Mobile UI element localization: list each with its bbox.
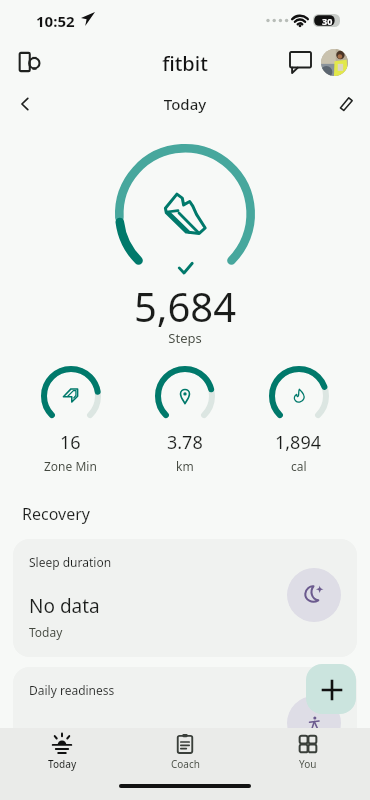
button[interactable]: 1,894	[260, 366, 337, 474]
button[interactable]: Daily readiness	[13, 667, 357, 775]
button[interactable]: Devices	[16, 48, 44, 76]
staticText: 10:52	[36, 11, 75, 31]
button[interactable]: Coach	[143, 733, 227, 771]
button[interactable]: Edit	[334, 92, 358, 116]
staticText: No data	[29, 593, 100, 619]
staticText: Sleep duration	[29, 554, 112, 570]
button[interactable]: Messages	[288, 50, 312, 74]
staticText: km	[176, 458, 194, 474]
button[interactable]: Sleep duration	[13, 539, 357, 657]
button[interactable]: Add	[306, 664, 356, 714]
staticText: You	[299, 757, 317, 771]
staticText: 30	[322, 15, 333, 27]
button[interactable]: Previous day	[13, 92, 37, 116]
staticText: Today	[29, 624, 63, 640]
staticText: 5,684	[0, 279, 370, 333]
button[interactable]: 3.78	[146, 366, 223, 474]
staticText: Today	[48, 757, 77, 771]
button[interactable]: Profile	[321, 49, 348, 76]
staticText: 1,894	[275, 430, 322, 455]
staticText: cal	[291, 458, 307, 474]
staticText: Today	[0, 94, 370, 114]
staticText: 16	[60, 430, 81, 455]
staticText: Steps	[0, 329, 370, 347]
staticText: Coach	[171, 757, 200, 771]
staticText: fitbit	[0, 50, 370, 77]
staticText: 3.78	[167, 430, 203, 455]
button[interactable]: 16	[32, 366, 109, 474]
staticText: Recovery	[22, 503, 90, 525]
button[interactable]: Today	[20, 733, 104, 771]
staticText: Daily readiness	[29, 682, 115, 698]
button[interactable]: You	[266, 733, 350, 771]
staticText: Zone Min	[44, 458, 97, 474]
